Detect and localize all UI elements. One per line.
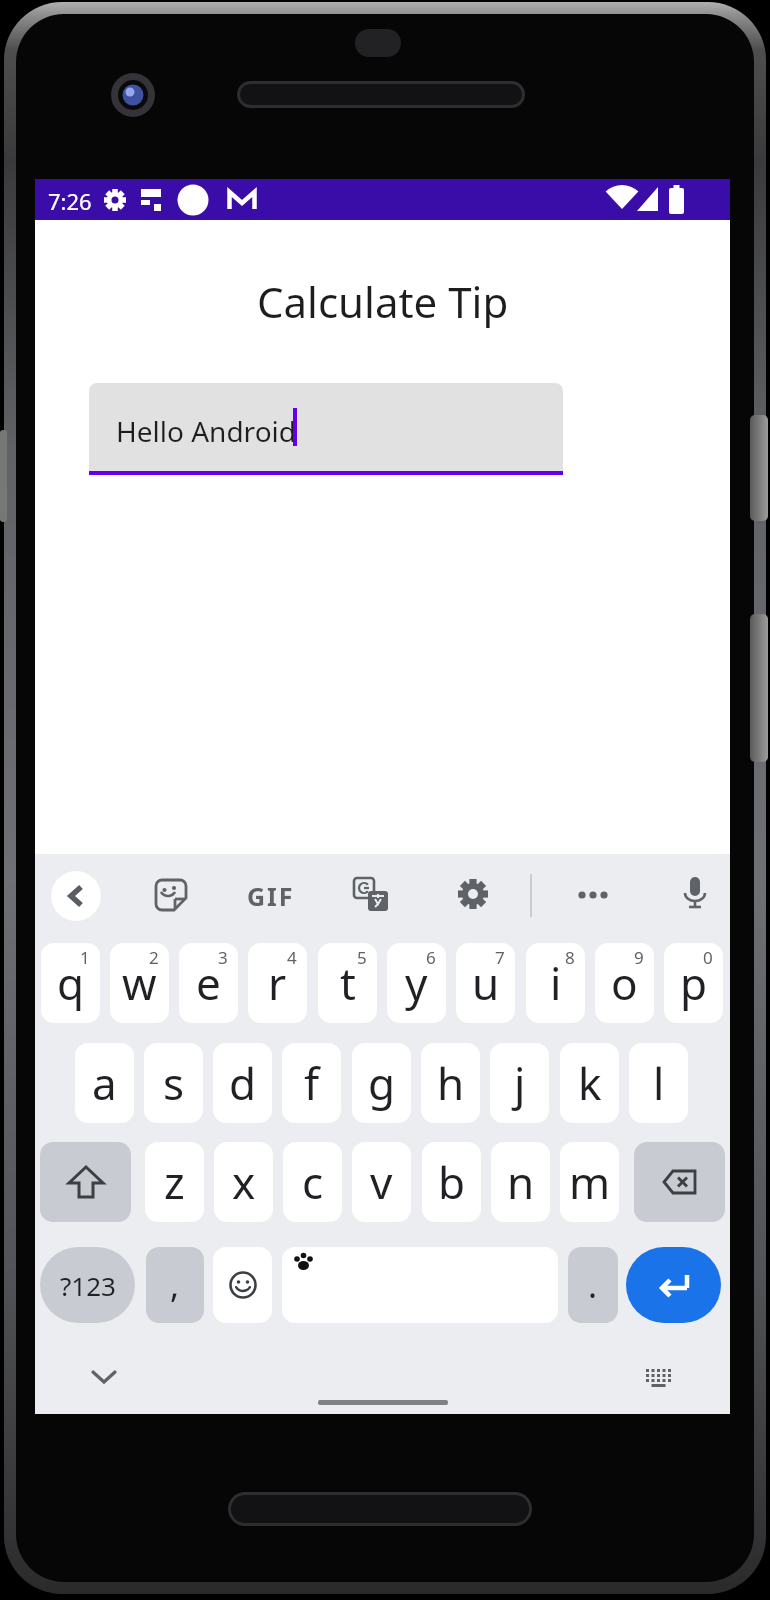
staticText: w <box>122 953 157 1013</box>
button[interactable] <box>634 1142 725 1222</box>
button[interactable]: k <box>560 1043 619 1123</box>
staticText: . <box>588 1262 598 1308</box>
staticText: a <box>92 1053 117 1113</box>
button[interactable]: , <box>146 1247 204 1323</box>
button[interactable]: f <box>282 1043 341 1123</box>
button[interactable]: o <box>595 943 654 1023</box>
button[interactable]: ?123 <box>40 1247 135 1323</box>
button[interactable]: q <box>41 943 100 1023</box>
button[interactable] <box>154 878 188 912</box>
button[interactable]: v <box>352 1142 411 1222</box>
staticText: l <box>653 1053 665 1113</box>
staticText: v <box>370 1152 393 1212</box>
staticText: x <box>232 1152 256 1212</box>
staticText: i <box>550 953 562 1013</box>
button[interactable]: s <box>144 1043 203 1123</box>
button[interactable] <box>354 878 388 911</box>
staticText: 4 <box>287 946 297 969</box>
staticText: c <box>302 1152 324 1212</box>
button[interactable] <box>40 1142 131 1222</box>
button[interactable]: l <box>629 1043 688 1123</box>
staticText: q <box>57 953 85 1013</box>
staticText: 6 <box>426 946 436 969</box>
staticText: , <box>170 1262 180 1308</box>
button[interactable]: Hello Android <box>89 383 563 471</box>
button[interactable]: m <box>560 1142 619 1222</box>
button[interactable]: i <box>526 943 585 1023</box>
staticText: e <box>196 953 221 1013</box>
staticText: 5 <box>357 946 367 969</box>
button[interactable]: t <box>318 943 377 1023</box>
button[interactable]: . <box>568 1247 618 1323</box>
staticText: k <box>578 1053 602 1113</box>
button[interactable]: y <box>387 943 446 1023</box>
button[interactable]: b <box>422 1142 481 1222</box>
button[interactable] <box>684 877 706 913</box>
staticText: 2 <box>149 946 159 969</box>
button[interactable] <box>282 1247 558 1323</box>
staticText: 8 <box>565 946 575 969</box>
staticText: j <box>514 1053 526 1113</box>
button[interactable]: u <box>456 943 515 1023</box>
staticText: 9 <box>634 946 644 969</box>
staticText: t <box>340 953 356 1013</box>
staticText: n <box>507 1152 535 1212</box>
staticText: u <box>472 953 500 1013</box>
staticText: Calculate Tip <box>257 273 509 330</box>
staticText: g <box>368 1053 396 1113</box>
staticText: 1 <box>80 946 90 969</box>
staticText: 7 <box>495 946 505 969</box>
staticText: f <box>304 1053 320 1113</box>
button[interactable]: z <box>145 1142 204 1222</box>
button[interactable]: j <box>490 1043 549 1123</box>
staticText: ?123 <box>60 1268 116 1303</box>
button[interactable]: w <box>110 943 169 1023</box>
staticText: r <box>268 953 287 1013</box>
staticText: GIF <box>247 879 295 909</box>
staticText: s <box>163 1053 185 1113</box>
staticText: m <box>569 1152 611 1212</box>
staticText: h <box>437 1053 465 1113</box>
button[interactable] <box>213 1247 272 1323</box>
staticText: 3 <box>218 946 228 969</box>
button[interactable]: e <box>179 943 238 1023</box>
button[interactable]: d <box>213 1043 272 1123</box>
button[interactable]: n <box>491 1142 550 1222</box>
button[interactable]: a <box>75 1043 134 1123</box>
button[interactable] <box>51 871 101 921</box>
button[interactable] <box>458 879 488 909</box>
button[interactable]: h <box>421 1043 480 1123</box>
staticText: d <box>229 1053 257 1113</box>
staticText: o <box>611 953 638 1013</box>
staticText: z <box>164 1152 185 1212</box>
button[interactable]: GIF <box>245 879 297 909</box>
staticText: y <box>405 953 428 1013</box>
staticText: b <box>438 1152 466 1212</box>
staticText: 0 <box>703 946 713 969</box>
staticText: Hello Android <box>116 412 297 450</box>
button[interactable]: p <box>664 943 723 1023</box>
button[interactable] <box>626 1247 721 1323</box>
button[interactable]: x <box>214 1142 273 1222</box>
button[interactable]: g <box>352 1043 411 1123</box>
staticText: p <box>680 953 708 1013</box>
button[interactable]: c <box>283 1142 342 1222</box>
staticText: 7:26 <box>48 186 92 216</box>
button[interactable]: r <box>248 943 307 1023</box>
